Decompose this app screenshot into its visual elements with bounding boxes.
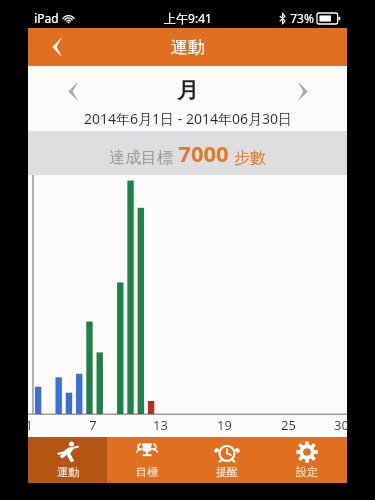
button[interactable]: 運動 — [28, 437, 107, 483]
staticText: 運動 — [57, 465, 79, 479]
staticText: 2014年6月1日 - 2014年06月30日 — [84, 109, 292, 128]
button[interactable]: Previous month — [54, 74, 88, 108]
staticText: 目標 — [136, 465, 158, 479]
staticText: 19 — [217, 416, 232, 434]
staticText: 提醒 — [216, 465, 238, 479]
staticText: 運動 — [171, 37, 205, 58]
staticText: 25 — [281, 416, 296, 434]
staticText: 7000 — [178, 138, 229, 168]
button[interactable]: 設定 — [267, 437, 347, 483]
button[interactable]: 目標 — [107, 437, 187, 483]
staticText: 1 — [25, 416, 33, 434]
staticText: 30 — [334, 416, 349, 434]
staticText: 月 — [177, 77, 199, 105]
button[interactable]: Next month — [287, 74, 321, 108]
staticText: 步數 — [234, 148, 266, 168]
button[interactable]: 提醒 — [187, 437, 267, 483]
button[interactable]: 達成目標 — [28, 131, 347, 175]
staticText: 上午9:41 — [164, 10, 212, 26]
staticText: 達成目標 — [109, 148, 173, 168]
staticText: 13 — [153, 416, 168, 434]
staticText: 73% — [290, 10, 314, 26]
staticText: iPad — [34, 10, 59, 26]
button[interactable]: Back — [38, 30, 72, 64]
staticText: 設定 — [296, 465, 318, 479]
staticText: 7 — [89, 416, 97, 434]
